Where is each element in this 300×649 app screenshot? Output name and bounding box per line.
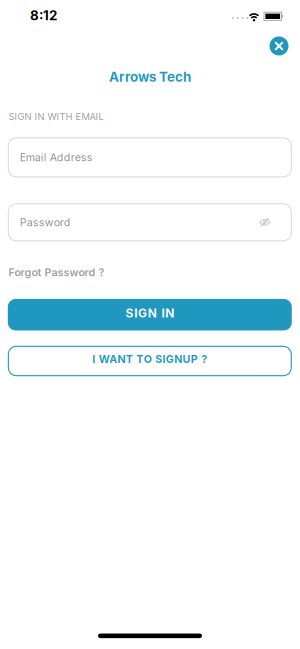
textField[interactable]: Email Address [20, 151, 276, 164]
button[interactable]: I WANT TO SIGNUP ? [8, 346, 292, 376]
button[interactable]: SIGN IN [8, 299, 292, 330]
staticText: I WANT TO SIGNUP ? [92, 353, 207, 365]
staticText: 8:12 [30, 8, 57, 23]
button[interactable]: Forgot Password ? [8, 266, 104, 279]
staticText: Password [20, 216, 71, 229]
textField[interactable]: Password [20, 216, 254, 229]
staticText: Arrows Tech [109, 69, 191, 85]
button[interactable]: Show password [254, 212, 276, 232]
staticText: Email Address [20, 151, 93, 164]
staticText: Email Address [20, 151, 93, 164]
staticText: Forgot Password ? [8, 266, 104, 279]
staticText: SIGN IN WITH EMAIL [8, 111, 103, 122]
staticText: Password [20, 216, 71, 229]
staticText: SIGN IN [125, 306, 174, 320]
button[interactable]: Close [269, 36, 288, 55]
